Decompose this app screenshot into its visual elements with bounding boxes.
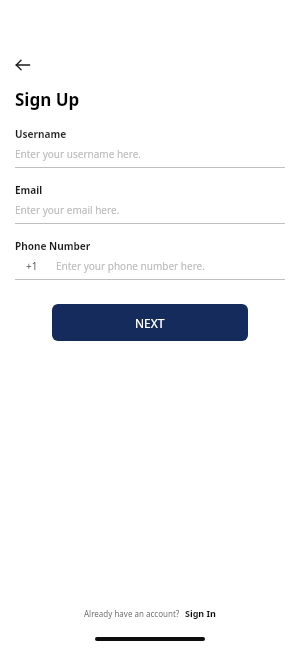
staticText: Sign In bbox=[185, 607, 216, 619]
staticText: Enter your email here. bbox=[15, 203, 120, 217]
staticText: Username bbox=[15, 127, 67, 141]
button[interactable]: Enter your email here. bbox=[15, 203, 285, 217]
button[interactable]: Back bbox=[15, 52, 41, 78]
staticText: Sign Up bbox=[15, 88, 80, 111]
staticText: Email bbox=[15, 183, 43, 197]
staticText: Enter your phone number here. bbox=[56, 259, 205, 273]
staticText: Already have an account? bbox=[84, 608, 180, 619]
button[interactable]: Sign In bbox=[185, 607, 216, 619]
staticText: +1 bbox=[26, 259, 38, 273]
button[interactable]: NEXT bbox=[52, 304, 248, 341]
staticText: Phone Number bbox=[15, 239, 91, 253]
staticText: NEXT bbox=[135, 315, 165, 331]
staticText: Enter your username here. bbox=[15, 147, 141, 161]
button[interactable]: +1 bbox=[15, 259, 285, 273]
button[interactable]: Enter your username here. bbox=[15, 147, 285, 161]
